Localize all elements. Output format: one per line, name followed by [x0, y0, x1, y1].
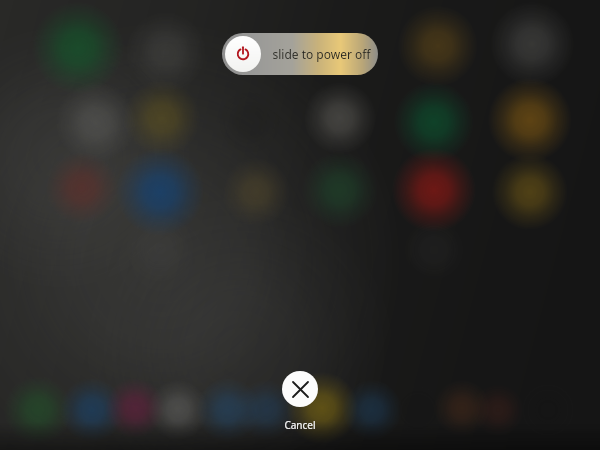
other: Cancel: [282, 371, 318, 407]
staticText: Cancel: [284, 418, 316, 432]
staticText: slide to power off: [272, 46, 371, 62]
other: Power off: [225, 36, 261, 72]
button[interactable]: Power off: [222, 33, 378, 75]
button[interactable]: Cancel: [270, 371, 330, 432]
